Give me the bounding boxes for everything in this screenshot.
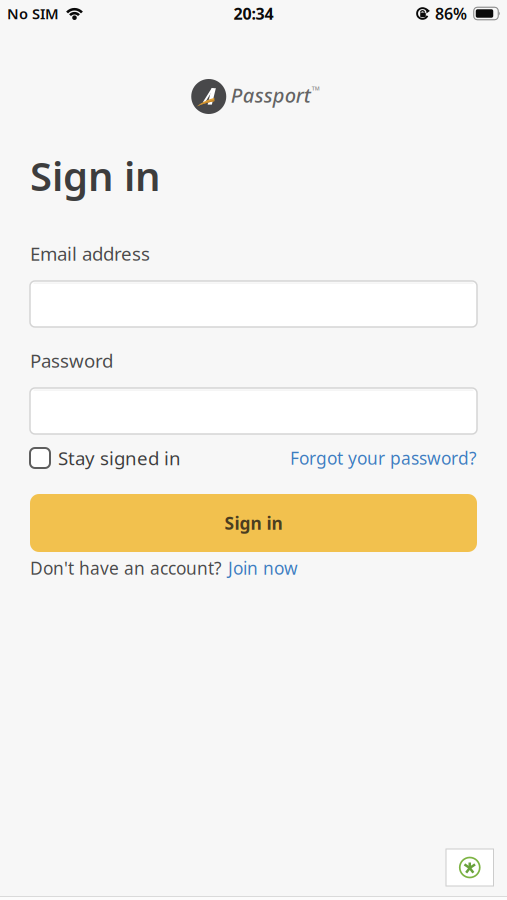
staticText: Forgot your password? (290, 446, 477, 469)
staticText: Password (30, 348, 113, 373)
staticText: Email address (30, 241, 150, 266)
button[interactable]: Environment (446, 849, 493, 886)
staticText: Stay signed in (58, 446, 181, 470)
button[interactable]: Join now (228, 556, 298, 579)
staticText: Join now (228, 556, 298, 579)
button[interactable]: Forgot your password? (290, 446, 477, 469)
staticText: Passport (231, 82, 311, 108)
staticText: 20:34 (233, 3, 273, 24)
button[interactable]: Stay signed in (30, 446, 181, 470)
button[interactable] (30, 281, 477, 327)
button[interactable]: Sign in (30, 494, 477, 552)
staticText: Don't have an account? (30, 556, 222, 579)
staticText: TM (312, 85, 320, 92)
button[interactable] (30, 388, 477, 434)
staticText: Sign in (30, 149, 161, 202)
staticText: 86% (435, 3, 467, 24)
staticText: No SIM (7, 4, 59, 23)
staticText: Sign in (224, 511, 282, 534)
